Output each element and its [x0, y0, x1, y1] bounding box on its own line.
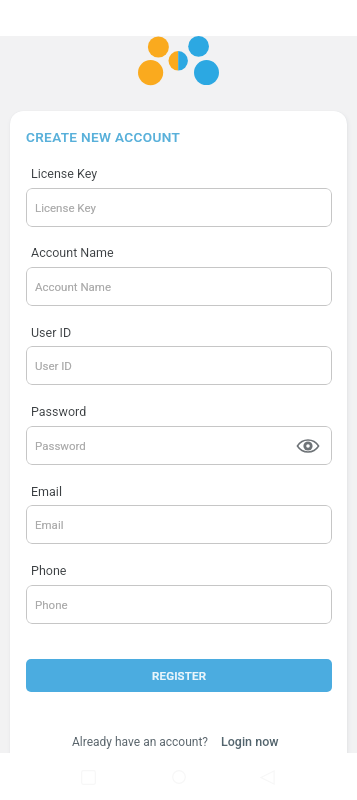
staticText: Account Name — [31, 245, 114, 260]
staticText: User ID — [35, 359, 72, 372]
staticText: Email — [35, 518, 64, 531]
staticText: Phone — [31, 563, 67, 578]
button[interactable]: Email — [26, 505, 332, 544]
staticText: Email — [31, 484, 62, 499]
staticText: REGISTER — [152, 669, 207, 682]
button[interactable]: Phone — [26, 585, 332, 624]
staticText: Login now — [221, 734, 279, 749]
button[interactable]: User ID — [26, 346, 332, 385]
staticText: CREATE NEW ACCOUNT — [26, 129, 181, 145]
staticText: Account Name — [35, 280, 112, 293]
staticText: License Key — [31, 166, 98, 181]
staticText: Phone — [35, 598, 68, 611]
button[interactable]: Account Name — [26, 267, 332, 306]
staticText: Already have an account? — [72, 735, 209, 749]
button[interactable]: Login now — [221, 734, 279, 749]
staticText: Password — [31, 404, 87, 419]
staticText: License Key — [35, 201, 96, 214]
button[interactable]: License Key — [26, 188, 332, 227]
button[interactable]: Show password — [293, 431, 323, 461]
staticText: Password — [35, 439, 86, 452]
button[interactable]: Password — [26, 426, 332, 465]
button[interactable]: REGISTER — [26, 659, 332, 692]
staticText: User ID — [31, 325, 72, 340]
